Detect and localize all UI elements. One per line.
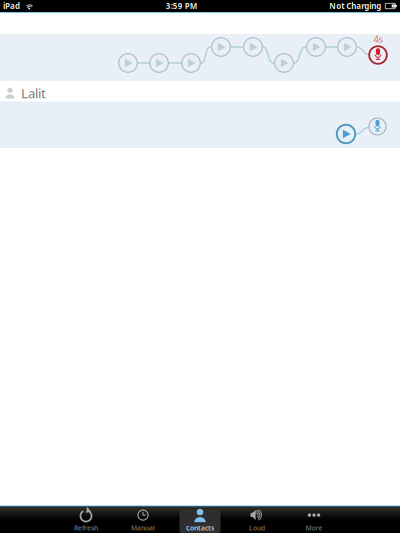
staticText: iPad	[3, 1, 20, 11]
button[interactable]: Refresh	[57, 505, 114, 533]
button[interactable]: Manual	[114, 505, 171, 533]
staticText: Refresh	[74, 524, 98, 532]
staticText: 4s	[373, 33, 382, 45]
staticText: More	[305, 524, 322, 532]
staticText: Lalit	[21, 84, 46, 102]
button[interactable]: Loud	[228, 505, 285, 533]
staticText: Contacts	[186, 524, 214, 532]
button[interactable]: Lalit	[0, 81, 400, 102]
button[interactable]: More	[285, 505, 342, 533]
button[interactable]: Record	[0, 34, 400, 81]
staticText: 3:59 PM	[166, 1, 198, 11]
button[interactable]: Contacts	[171, 505, 228, 533]
staticText: Not Charging	[329, 1, 381, 11]
staticText: Loud	[249, 524, 265, 532]
staticText: Manual	[131, 524, 155, 532]
